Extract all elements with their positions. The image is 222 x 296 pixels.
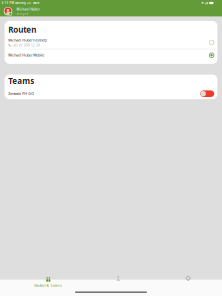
button[interactable]: Zentrale FH GO [5, 87, 217, 100]
staticText: Routen [8, 24, 36, 35]
staticText: Verfügbar [17, 12, 29, 15]
staticText: Routen & Teams [34, 283, 62, 288]
button[interactable]: Michael Huber Mobile [5, 49, 217, 61]
staticText: Zentrale FH GO [8, 91, 34, 96]
staticText: Michael Huber Festnetz [8, 38, 47, 43]
button[interactable]: Michael Huber [0, 6, 222, 16]
button[interactable]: Routen & Teams [17, 281, 79, 283]
staticText: Michael Huber [17, 7, 40, 11]
button[interactable]: Michael Huber Festnetz [5, 36, 217, 49]
staticText: Teams [8, 75, 34, 86]
staticText: Montag 20. März [15, 1, 39, 5]
staticText: +41 41 500 12 20 [12, 43, 40, 47]
staticText: Michael Huber Mobile [8, 53, 44, 58]
staticText: 3:13 PM [2, 1, 14, 5]
